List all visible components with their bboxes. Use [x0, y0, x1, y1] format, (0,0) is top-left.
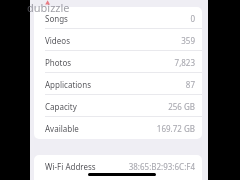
staticText: Wi-Fi Address: [45, 161, 96, 172]
staticText: 87: [185, 79, 195, 90]
staticText: Songs: [45, 13, 68, 24]
button[interactable]: Wi-Fi Address: [34, 155, 202, 177]
staticText: Capacity: [45, 101, 77, 112]
button[interactable]: Available: [34, 117, 202, 139]
staticText: 169.72 GB: [156, 123, 195, 134]
staticText: Videos: [45, 35, 70, 46]
staticText: 256 GB: [168, 101, 195, 112]
button[interactable]: Capacity: [34, 95, 202, 117]
other: Home indicator: [88, 173, 156, 176]
button[interactable]: Songs: [34, 7, 202, 29]
button[interactable]: Applications: [34, 73, 202, 95]
staticText: Applications: [45, 79, 91, 90]
button[interactable]: Videos: [34, 29, 202, 51]
staticText: 0: [190, 13, 195, 24]
staticText: 38:65:B2:93:6C:F4: [128, 161, 195, 172]
staticText: 359: [181, 35, 195, 46]
staticText: Photos: [45, 57, 72, 68]
staticText: Available: [45, 123, 79, 134]
staticText: 7,823: [174, 57, 195, 68]
button[interactable]: Photos: [34, 51, 202, 73]
staticText: dubizzle: [27, 0, 70, 15]
